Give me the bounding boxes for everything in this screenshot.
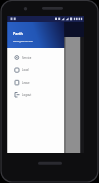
staticText: Lease: [22, 81, 30, 85]
staticText: Load: [22, 68, 29, 72]
staticText: Service: [22, 56, 32, 60]
staticText: parth@gmail.com: [13, 39, 34, 42]
staticText: Parth: [13, 31, 23, 36]
staticText: Logout: [22, 93, 32, 97]
